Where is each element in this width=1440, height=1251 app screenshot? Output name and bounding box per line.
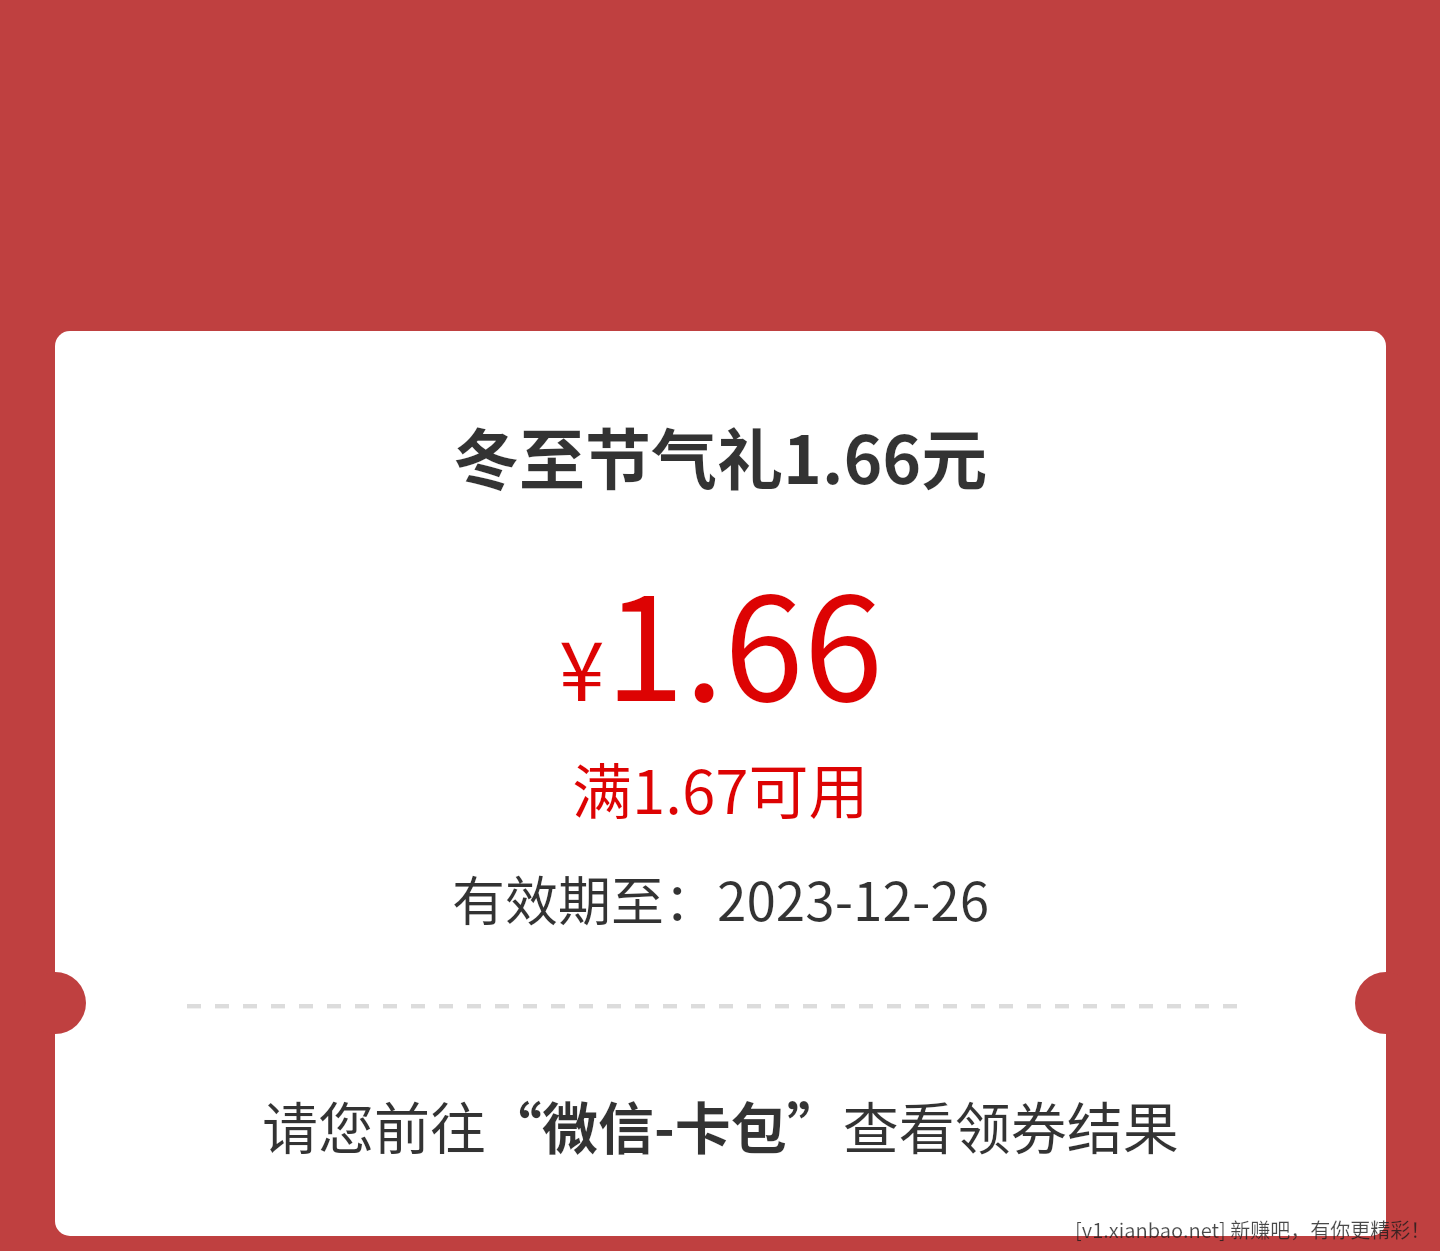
staticText: 冬至节气礼1.66元	[453, 407, 988, 503]
staticText: 1.66	[605, 535, 883, 742]
staticText: 满1.67可用	[572, 744, 869, 831]
staticText: 请您前往“微信-卡包”查看领券结果	[262, 1084, 1179, 1165]
button[interactable]: 冬至节气礼 1.66 元优惠券	[55, 331, 1386, 1236]
staticText: ¥	[559, 606, 605, 725]
staticText: 有效期至：2023-12-26	[452, 860, 990, 937]
staticText: [v1.xianbao.net] 新赚吧，有你更精彩！	[1075, 1215, 1431, 1244]
